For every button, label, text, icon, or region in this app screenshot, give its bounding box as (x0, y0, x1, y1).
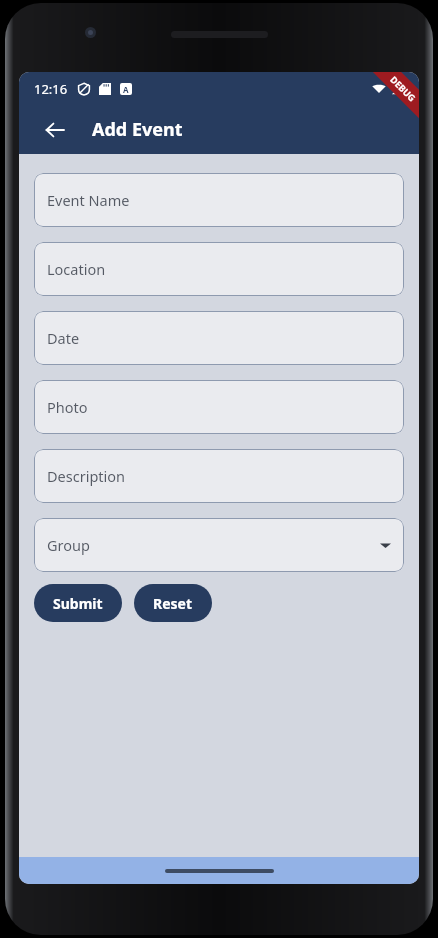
staticText: Submit (53, 594, 103, 613)
staticText: Description (47, 466, 126, 486)
button[interactable]: Date (34, 311, 404, 365)
staticText: Location (47, 259, 106, 279)
button[interactable]: Event Name (34, 173, 404, 227)
staticText: Event Name (47, 190, 130, 210)
button[interactable]: Group (34, 518, 404, 572)
button[interactable]: Reset (134, 584, 212, 622)
staticText: Group (47, 535, 90, 555)
button[interactable]: Location (34, 242, 404, 296)
staticText: Reset (153, 594, 193, 613)
button[interactable]: Submit (34, 584, 122, 622)
staticText: DEBUG (388, 73, 419, 104)
staticText: Photo (47, 397, 88, 417)
staticText: Add Event (92, 117, 183, 142)
button[interactable]: Back (37, 112, 73, 148)
button[interactable]: Photo (34, 380, 404, 434)
button[interactable]: Description (34, 449, 404, 503)
staticText: Date (47, 328, 80, 348)
staticText: A (123, 84, 129, 95)
staticText: 12:16 (34, 80, 68, 98)
